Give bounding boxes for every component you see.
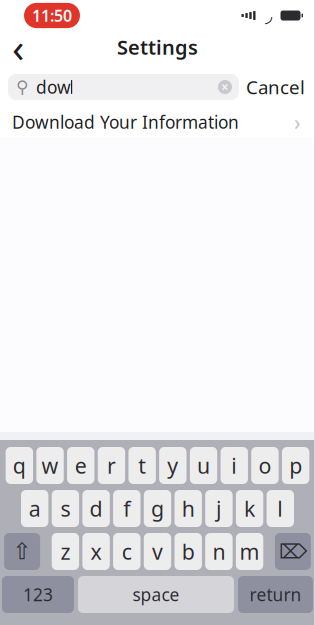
staticText: e <box>75 451 87 480</box>
staticText: Download Your Information <box>12 110 239 133</box>
staticText: c <box>122 537 132 566</box>
staticText: u <box>197 451 210 480</box>
button[interactable]: t <box>128 447 156 484</box>
staticText: 11:50 <box>32 5 72 26</box>
button[interactable]: h <box>174 490 202 527</box>
button[interactable]: n <box>205 533 233 570</box>
staticText: r <box>107 451 116 480</box>
button[interactable]: u <box>190 447 217 484</box>
staticText: 123 <box>23 583 53 606</box>
staticText: w <box>42 451 59 480</box>
staticText: ⌦ <box>279 540 307 563</box>
staticText: y <box>167 451 178 480</box>
staticText: ⚲ <box>16 77 29 97</box>
button[interactable]: r <box>98 447 125 484</box>
button[interactable]: y <box>159 447 187 484</box>
button[interactable]: Cancel <box>239 72 312 102</box>
button[interactable]: z <box>52 533 79 570</box>
button[interactable]: Shift <box>4 533 40 570</box>
button[interactable]: x <box>82 533 110 570</box>
staticText: v <box>152 537 163 566</box>
button[interactable]: e <box>67 447 94 484</box>
staticText: ⇧ <box>13 539 32 564</box>
button[interactable]: f <box>113 490 140 527</box>
staticText: j <box>216 494 222 523</box>
staticText: x <box>91 537 102 566</box>
staticText: g <box>151 494 164 523</box>
button[interactable]: Clear text <box>213 75 237 99</box>
staticText: s <box>60 494 70 523</box>
button[interactable]: Back <box>1 31 35 63</box>
staticText: q <box>13 451 26 480</box>
button[interactable]: a <box>21 490 48 527</box>
button[interactable]: i <box>220 447 248 484</box>
staticText: × <box>221 78 229 96</box>
button[interactable]: space <box>78 576 234 613</box>
button[interactable]: k <box>236 490 263 527</box>
button[interactable]: j <box>205 490 233 527</box>
button[interactable]: d <box>82 490 110 527</box>
button[interactable]: p <box>282 447 309 484</box>
staticText: z <box>60 537 70 566</box>
button[interactable]: 123 <box>2 576 74 613</box>
staticText: b <box>182 537 195 566</box>
staticText: k <box>244 494 255 523</box>
staticText: ◞ <box>265 5 272 26</box>
staticText: t <box>138 451 146 480</box>
staticText: l <box>277 494 283 523</box>
staticText: m <box>240 537 260 566</box>
button[interactable]: w <box>36 447 64 484</box>
staticText: n <box>212 537 225 566</box>
staticText: space <box>132 583 179 606</box>
button[interactable]: return <box>238 576 313 613</box>
staticText: dow <box>36 75 71 98</box>
button[interactable]: o <box>251 447 279 484</box>
button[interactable]: q <box>6 447 33 484</box>
staticText: › <box>294 108 301 136</box>
button[interactable]: Download Your Information <box>0 107 315 137</box>
button[interactable]: Delete <box>275 533 311 570</box>
staticText: return <box>249 583 301 606</box>
button[interactable]: b <box>174 533 202 570</box>
button[interactable]: m <box>236 533 263 570</box>
staticText: a <box>29 494 41 523</box>
staticText: i <box>231 451 237 480</box>
staticText: Settings <box>117 34 198 60</box>
staticText: f <box>123 494 130 523</box>
button[interactable]: l <box>267 490 294 527</box>
staticText: ‹ <box>12 20 24 73</box>
button[interactable]: c <box>113 533 140 570</box>
button[interactable]: v <box>144 533 171 570</box>
staticText: o <box>258 451 271 480</box>
staticText: h <box>182 494 195 523</box>
staticText: Cancel <box>246 75 305 99</box>
button[interactable]: g <box>144 490 171 527</box>
staticText: p <box>289 451 302 480</box>
staticText: d <box>90 494 103 523</box>
button[interactable]: s <box>52 490 79 527</box>
